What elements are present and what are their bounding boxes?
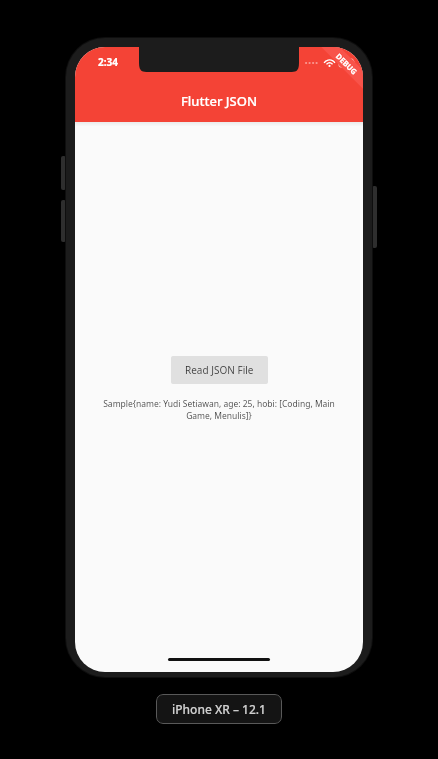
staticText: Read JSON File xyxy=(185,363,254,377)
staticText: Flutter JSON xyxy=(181,92,258,110)
staticText: DEBUG xyxy=(334,51,359,77)
staticText: Sample{name: Yudi Setiawan, age: 25, hob… xyxy=(95,398,343,422)
button[interactable]: iPhone XR – 12.1 xyxy=(156,694,282,724)
button[interactable]: Read JSON File xyxy=(171,356,268,384)
staticText: 2:34 xyxy=(98,55,118,69)
staticText: iPhone XR – 12.1 xyxy=(172,701,266,717)
